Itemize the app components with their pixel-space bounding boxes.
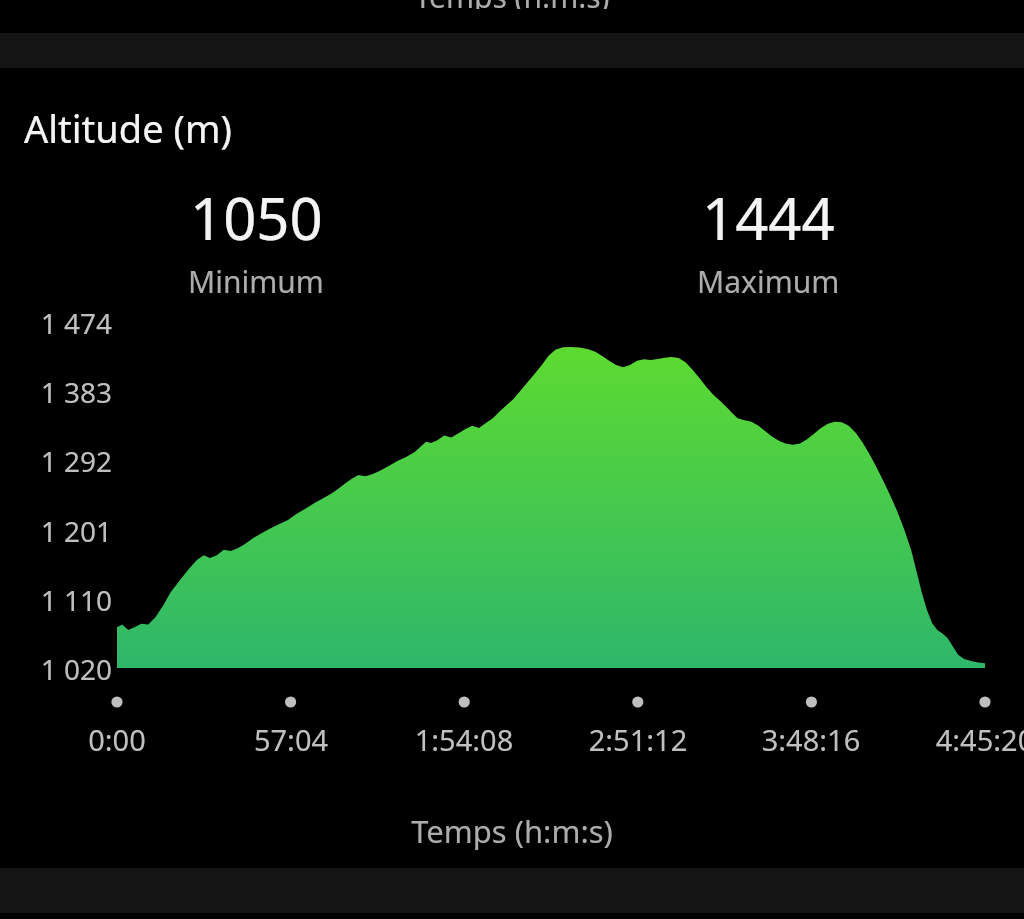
staticText: 1 474 xyxy=(0,304,112,342)
staticText: 2:51:12 xyxy=(558,720,718,759)
staticText: Temps (h:m:s) xyxy=(0,0,1024,9)
staticText: 1 383 xyxy=(0,373,112,411)
staticText: Temps (h:m:s) xyxy=(0,810,1024,852)
staticText: 1050 xyxy=(190,178,323,257)
button[interactable]: Temps (h:m:s) xyxy=(0,0,1024,33)
button[interactable]: Altitude (m) xyxy=(0,68,1024,868)
staticText: Maximum xyxy=(697,261,840,302)
staticText: 1:54:08 xyxy=(384,720,544,759)
staticText: 1444 xyxy=(702,178,835,257)
other: Altitude elevation profile chart xyxy=(0,300,1024,770)
staticText: Altitude (m) xyxy=(24,102,232,154)
staticText: Minimum xyxy=(188,261,324,302)
staticText: 1 292 xyxy=(0,442,112,480)
staticText: 3:48:16 xyxy=(731,720,891,759)
staticText: 57:04 xyxy=(211,720,371,759)
staticText: 1 110 xyxy=(0,581,112,619)
button[interactable]: 1050 xyxy=(0,178,512,302)
staticText: 1 020 xyxy=(0,650,112,688)
staticText: 0:00 xyxy=(37,720,197,759)
staticText: 1 201 xyxy=(0,512,112,550)
staticText: 4:45:20 xyxy=(905,720,1024,759)
button[interactable]: 1444 xyxy=(512,178,1024,302)
